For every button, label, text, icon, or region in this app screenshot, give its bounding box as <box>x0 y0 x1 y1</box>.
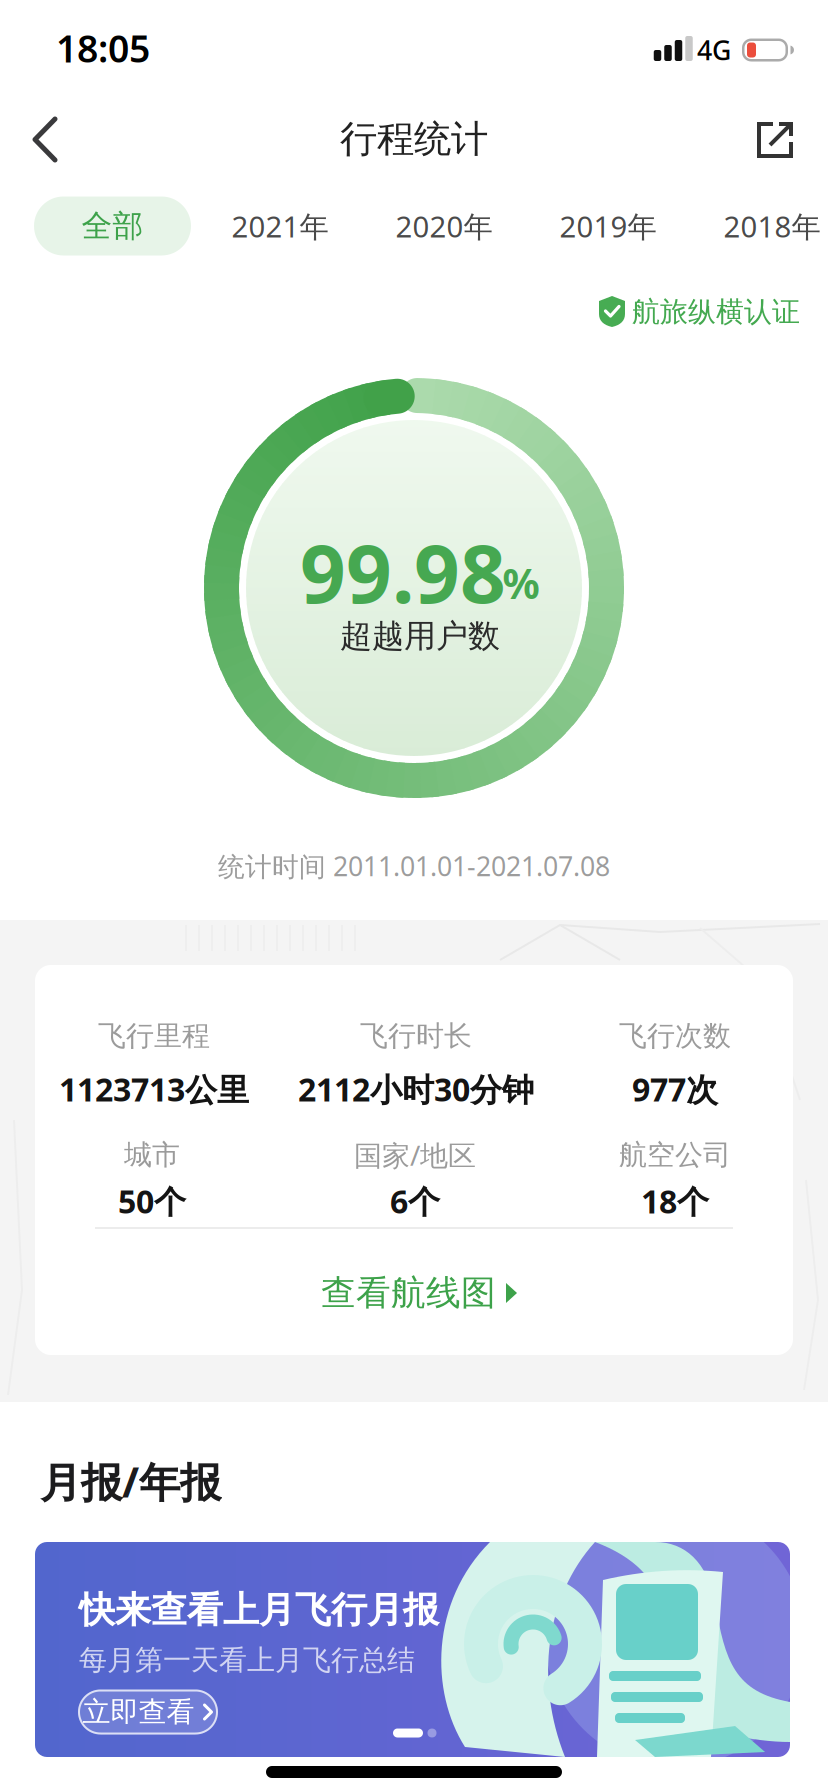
staticText: 飞行里程 <box>98 1019 210 1053</box>
staticText: 立即查看 <box>82 1695 194 1729</box>
staticText: 国家/地区 <box>354 1136 476 1174</box>
staticText: 统计时间 2011.01.01-2021.07.08 <box>218 848 610 884</box>
staticText: 航空公司 <box>619 1138 731 1172</box>
staticText: 快来查看上月飞行月报 <box>79 1588 439 1632</box>
staticText: 2018年 <box>723 206 820 245</box>
staticText: 航旅纵横认证 <box>632 295 800 329</box>
button[interactable]: 全部 <box>34 196 191 255</box>
staticText: 飞行次数 <box>619 1019 731 1053</box>
button[interactable]: Back <box>1 96 89 184</box>
button[interactable]: 2021年 <box>200 196 360 256</box>
staticText: 99.98 <box>300 519 506 625</box>
staticText: 2019年 <box>559 206 656 245</box>
staticText: 1123713公里 <box>59 1068 249 1110</box>
staticText: 全部 <box>81 207 143 245</box>
button[interactable]: Share <box>726 96 814 184</box>
staticText: 2020年 <box>395 206 492 245</box>
staticText: 4G <box>697 32 731 68</box>
staticText: 超越用户数 <box>340 616 500 656</box>
staticText: 6个 <box>390 1180 440 1222</box>
staticText: 月报/年报 <box>40 1454 221 1509</box>
staticText: % <box>502 556 539 610</box>
button[interactable]: 2020年 <box>364 196 524 256</box>
staticText: 50个 <box>118 1180 186 1222</box>
staticText: 飞行时长 <box>360 1019 472 1053</box>
staticText: 2112小时30分钟 <box>298 1068 534 1110</box>
staticText: 2021年 <box>231 206 328 245</box>
staticText: 行程统计 <box>340 116 488 162</box>
button[interactable]: 2018年 <box>692 196 828 256</box>
staticText: 977次 <box>632 1068 718 1110</box>
button[interactable]: 快来查看上月飞行月报 <box>35 1542 790 1757</box>
staticText: 城市 <box>124 1138 180 1172</box>
staticText: 查看航线图 <box>321 1272 496 1314</box>
staticText: 每月第一天看上月飞行总结 <box>79 1643 415 1677</box>
staticText: 18:05 <box>56 23 150 73</box>
button[interactable]: 查看航线图 <box>280 1258 560 1328</box>
button[interactable]: 2019年 <box>528 196 688 256</box>
staticText: 18个 <box>641 1180 709 1222</box>
